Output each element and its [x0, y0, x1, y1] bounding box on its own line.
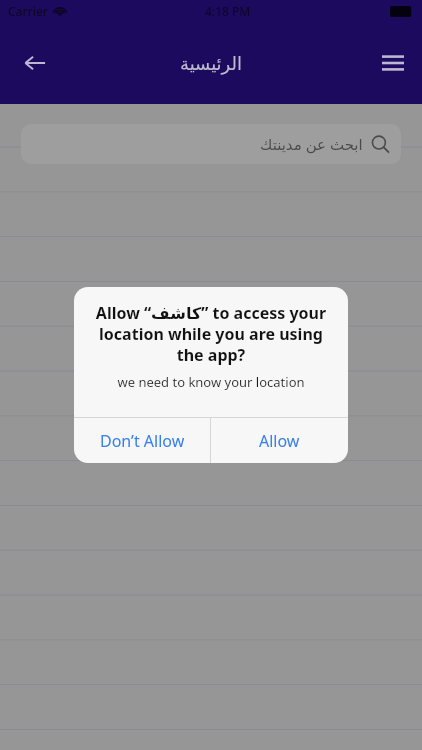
staticText: ابحث عن مدينتك — [260, 134, 363, 154]
button[interactable]: ابحث عن مدينتك — [21, 124, 401, 164]
staticText: Allow — [259, 430, 300, 452]
staticText: we need to know your location — [90, 373, 332, 391]
staticText: Allow “كاشف” to access your location whi… — [90, 302, 332, 366]
button[interactable]: Allow — [211, 418, 348, 463]
staticText: Don’t Allow — [100, 430, 185, 452]
staticText: 4:18 PM — [205, 3, 251, 19]
staticText: الرئيسية — [180, 53, 242, 74]
button[interactable]: Back — [14, 42, 56, 84]
button[interactable]: Don’t Allow — [74, 418, 210, 463]
button[interactable]: Menu — [372, 42, 414, 84]
staticText: Carrier — [8, 3, 48, 19]
